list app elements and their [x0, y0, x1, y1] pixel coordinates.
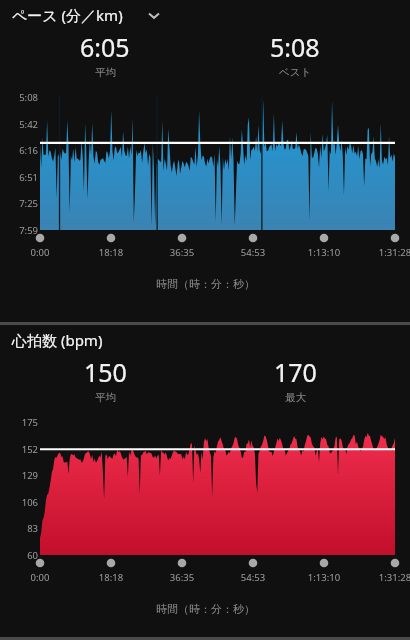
staticText: 最大 [285, 391, 306, 404]
staticText: 5:08 [270, 30, 320, 64]
button[interactable]: ペース (分／km) [0, 0, 410, 30]
staticText: 1:31:28 [373, 246, 410, 259]
button[interactable]: 5:08 [250, 30, 340, 79]
staticText: 54:53 [231, 571, 275, 584]
staticText: 7:59 [6, 224, 38, 237]
button[interactable]: 心拍数 (bpm) [0, 325, 410, 355]
staticText: 時間（時：分：秒） [156, 602, 255, 616]
staticText: 7:25 [6, 197, 38, 210]
staticText: 170 [274, 355, 317, 389]
staticText: 106 [6, 496, 38, 509]
staticText: 129 [6, 469, 38, 482]
other: Change metric [144, 5, 164, 25]
staticText: 18:18 [89, 571, 133, 584]
staticText: 0:00 [18, 246, 62, 259]
staticText: 60 [6, 549, 38, 562]
staticText: 5:08 [6, 91, 38, 104]
staticText: 54:53 [231, 246, 275, 259]
staticText: 時間（時：分：秒） [156, 277, 255, 291]
staticText: 6:05 [80, 30, 130, 64]
staticText: 6:16 [6, 144, 38, 157]
staticText: 5:42 [6, 118, 38, 131]
button[interactable]: 6:05 [60, 30, 150, 79]
staticText: 0:00 [18, 571, 62, 584]
staticText: 心拍数 (bpm) [12, 330, 103, 350]
staticText: ベスト [279, 66, 312, 79]
staticText: 175 [6, 416, 38, 429]
staticText: 1:13:10 [302, 246, 346, 259]
staticText: 1:31:28 [373, 571, 410, 584]
staticText: 平均 [95, 66, 116, 79]
staticText: 36:35 [160, 246, 204, 259]
staticText: 平均 [95, 391, 116, 404]
staticText: 83 [6, 522, 38, 535]
button[interactable]: 150 [60, 355, 150, 404]
staticText: 36:35 [160, 571, 204, 584]
staticText: ペース (分／km) [12, 5, 123, 25]
staticText: 18:18 [89, 246, 133, 259]
staticText: 1:13:10 [302, 571, 346, 584]
staticText: 150 [84, 355, 127, 389]
staticText: 152 [6, 443, 38, 456]
staticText: 6:51 [6, 171, 38, 184]
button[interactable]: 170 [250, 355, 340, 404]
